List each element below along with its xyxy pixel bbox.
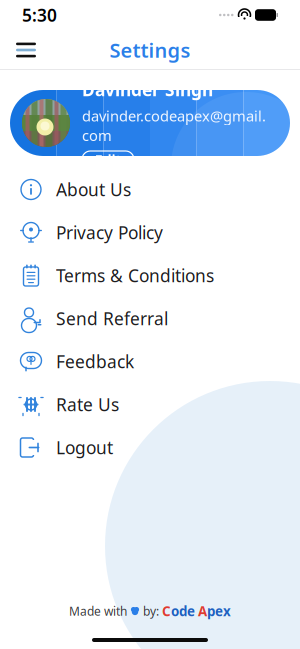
staticText: e [215, 602, 223, 620]
button[interactable]: Logout [0, 426, 300, 469]
staticText: p [207, 602, 215, 620]
staticText: Logout [56, 436, 113, 459]
button[interactable]: About Us [0, 168, 300, 211]
staticText: Davinder Singh [82, 78, 213, 101]
staticText: o [171, 602, 179, 620]
staticText: Terms & Conditions [56, 264, 214, 287]
staticText: A [198, 602, 207, 620]
button[interactable]: Menu [4, 30, 48, 70]
staticText: davinder.codeapex@gmail.com [82, 106, 266, 145]
staticText: Settings [109, 37, 190, 63]
staticText: by: [143, 603, 159, 619]
staticText: Edit [94, 150, 121, 169]
staticText [195, 602, 198, 620]
staticText: Rate Us [56, 393, 119, 416]
staticText: Privacy Policy [56, 221, 163, 244]
staticText: Feedback [56, 350, 134, 373]
staticText: C [162, 602, 171, 620]
staticText: About Us [56, 178, 131, 201]
button[interactable]: Send Referral [0, 297, 300, 340]
staticText: Made with [69, 603, 127, 619]
button[interactable]: Terms & Conditions [0, 254, 300, 297]
button[interactable]: Davinder Singh [0, 70, 300, 156]
button[interactable]: Edit [82, 151, 134, 168]
staticText: 5:30 [22, 3, 57, 26]
button[interactable]: Privacy Policy [0, 211, 300, 254]
staticText: e [187, 602, 195, 620]
staticText: d [179, 602, 187, 620]
staticText: Send Referral [56, 307, 168, 330]
staticText: x [223, 602, 231, 620]
button[interactable]: Rate Us [0, 383, 300, 426]
button[interactable]: Feedback [0, 340, 300, 383]
